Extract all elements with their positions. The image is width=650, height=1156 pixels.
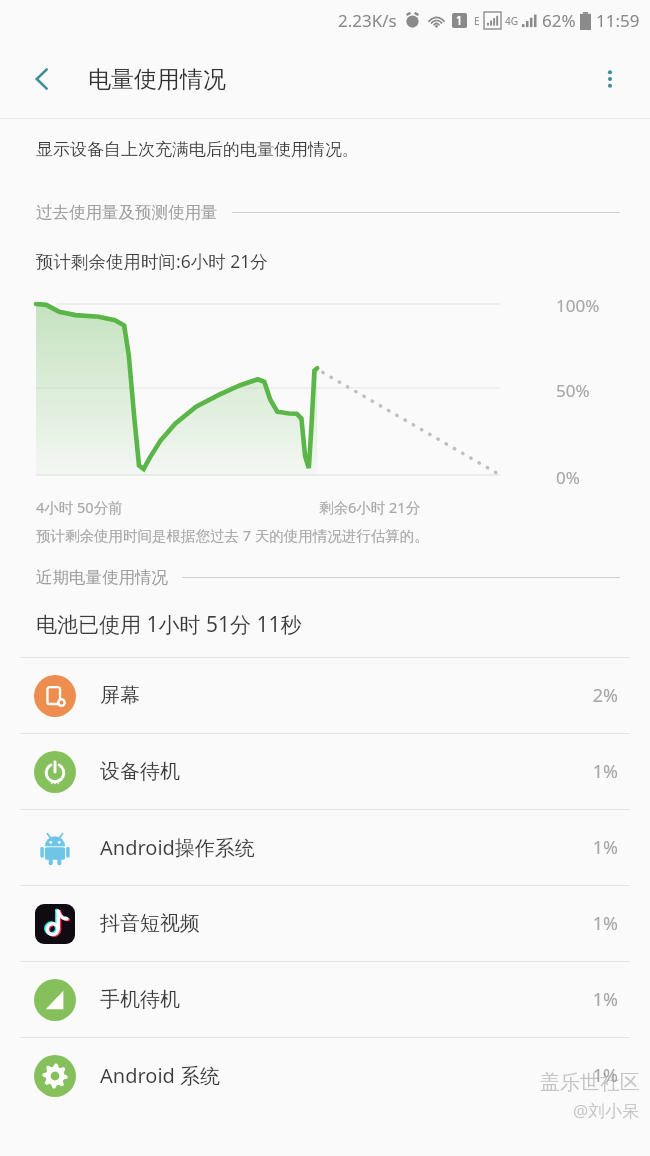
button[interactable]: 抖音短视频 bbox=[0, 886, 650, 961]
staticText: 100% bbox=[556, 294, 600, 317]
staticText: 近期电量使用情况 bbox=[36, 567, 168, 588]
staticText: 抖音短视频 bbox=[100, 911, 200, 936]
staticText: 1% bbox=[592, 759, 618, 784]
staticText: 0% bbox=[556, 466, 580, 489]
staticText: 电量使用情况 bbox=[88, 65, 226, 94]
staticText: 1% bbox=[592, 835, 618, 860]
staticText: 屏幕 bbox=[100, 683, 140, 708]
staticText: 2.23K/s bbox=[338, 9, 397, 32]
staticText: 1% bbox=[592, 911, 618, 936]
staticText: 11:59 bbox=[596, 9, 640, 32]
button[interactable]: Android操作系统 bbox=[0, 810, 650, 885]
button[interactable]: 屏幕 bbox=[0, 658, 650, 733]
staticText: 50% bbox=[556, 379, 590, 402]
staticText: E bbox=[474, 14, 480, 28]
staticText: 62% bbox=[542, 9, 576, 32]
staticText: 电池已使用 1小时 51分 11秒 bbox=[36, 610, 302, 639]
staticText: 设备待机 bbox=[100, 759, 180, 784]
button[interactable]: More options bbox=[582, 51, 638, 107]
button[interactable]: 设备待机 bbox=[0, 734, 650, 809]
staticText: Android操作系统 bbox=[100, 834, 255, 861]
staticText: 2% bbox=[592, 683, 618, 708]
staticText: 1% bbox=[592, 1063, 618, 1088]
staticText: 过去使用量及预测使用量 bbox=[36, 202, 218, 223]
staticText: 显示设备自上次充满电后的电量使用情况。 bbox=[36, 139, 359, 160]
button[interactable]: 手机待机 bbox=[0, 962, 650, 1037]
staticText: 手机待机 bbox=[100, 987, 180, 1012]
button[interactable]: Android 系统 bbox=[0, 1038, 650, 1113]
staticText: Android 系统 bbox=[100, 1062, 221, 1089]
staticText: 剩余6小时 21分 bbox=[319, 497, 421, 517]
staticText: 4G bbox=[505, 14, 518, 28]
staticText: @刘小呆 bbox=[573, 1099, 640, 1122]
staticText: 1% bbox=[592, 987, 618, 1012]
staticText: 预计剩余使用时间是根据您过去 7 天的使用情况进行估算的。 bbox=[36, 525, 429, 545]
button[interactable]: Back bbox=[14, 51, 70, 107]
staticText: 预计剩余使用时间:6小时 21分 bbox=[36, 249, 268, 273]
staticText: 4小时 50分前 bbox=[36, 497, 123, 517]
staticText: 盖乐世社区 bbox=[540, 1070, 640, 1095]
